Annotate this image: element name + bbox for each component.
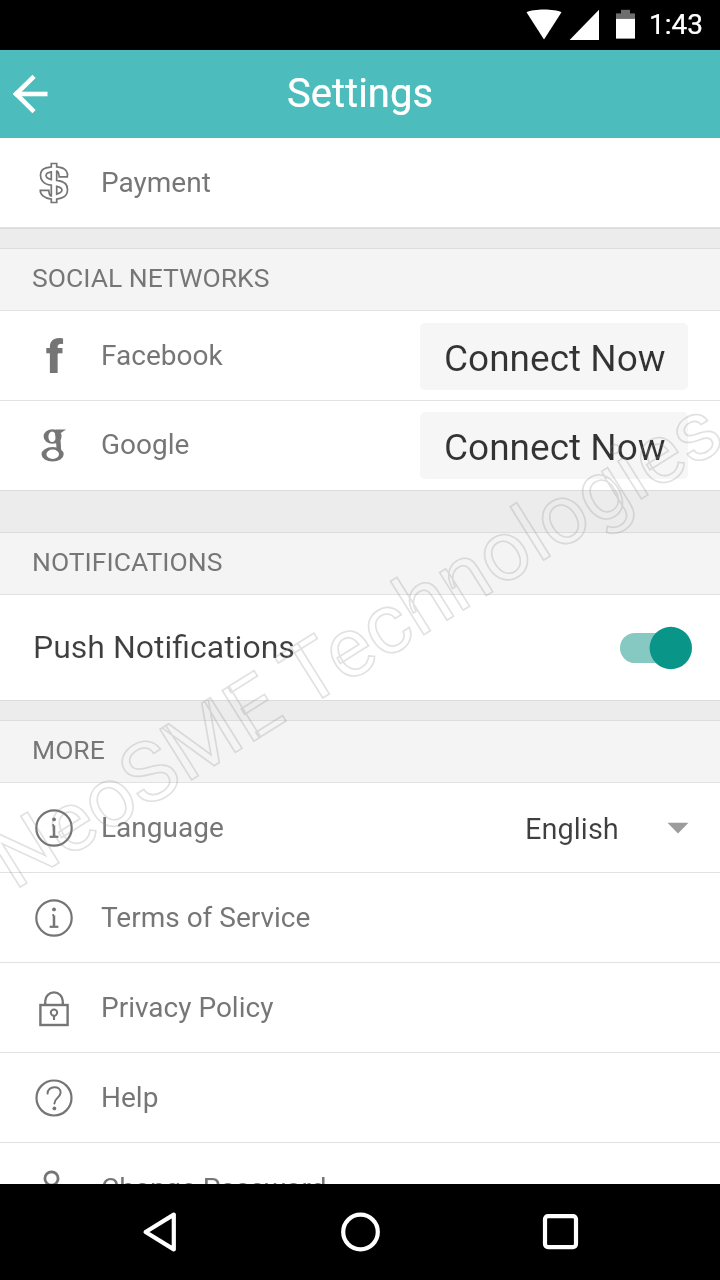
staticText: Change Password: [101, 1172, 327, 1184]
staticText: MORE: [32, 734, 105, 765]
staticText: Connect Now: [444, 337, 666, 380]
staticText: Facebook: [101, 339, 223, 372]
staticText: Help: [101, 1081, 159, 1114]
staticText: Settings: [287, 70, 434, 117]
staticText: Connect Now: [444, 426, 666, 469]
button[interactable]: Language: [0, 783, 720, 873]
button[interactable]: Recent apps: [520, 1192, 600, 1272]
button[interactable]: Payment: [0, 138, 720, 228]
button[interactable]: Change language: [635, 783, 720, 873]
staticText: NeoSME Technologies: [0, 378, 720, 908]
staticText: Language: [101, 811, 224, 844]
button[interactable]: Back: [120, 1192, 200, 1272]
button[interactable]: Connect Now: [420, 323, 688, 390]
staticText: Terms of Service: [101, 901, 311, 934]
staticText: NOTIFICATIONS: [32, 546, 223, 577]
button[interactable]: Terms of Service: [0, 873, 720, 963]
staticText: Payment: [101, 166, 211, 199]
staticText: English: [525, 812, 619, 846]
staticText: f: [46, 329, 64, 377]
button[interactable]: Change Password: [0, 1143, 720, 1184]
button[interactable]: Push notifications toggle: [620, 625, 692, 671]
button[interactable]: Connect Now: [420, 412, 688, 479]
staticText: SOCIAL NETWORKS: [32, 262, 270, 293]
button[interactable]: Push Notifications: [0, 595, 720, 700]
staticText: Privacy Policy: [101, 991, 274, 1024]
button[interactable]: Home: [320, 1192, 400, 1272]
staticText: Push Notifications: [33, 628, 295, 666]
button[interactable]: Back: [0, 50, 64, 138]
button[interactable]: Privacy Policy: [0, 963, 720, 1053]
button[interactable]: Help: [0, 1053, 720, 1143]
staticText: Google: [101, 428, 190, 461]
staticText: 1:43: [649, 8, 703, 41]
